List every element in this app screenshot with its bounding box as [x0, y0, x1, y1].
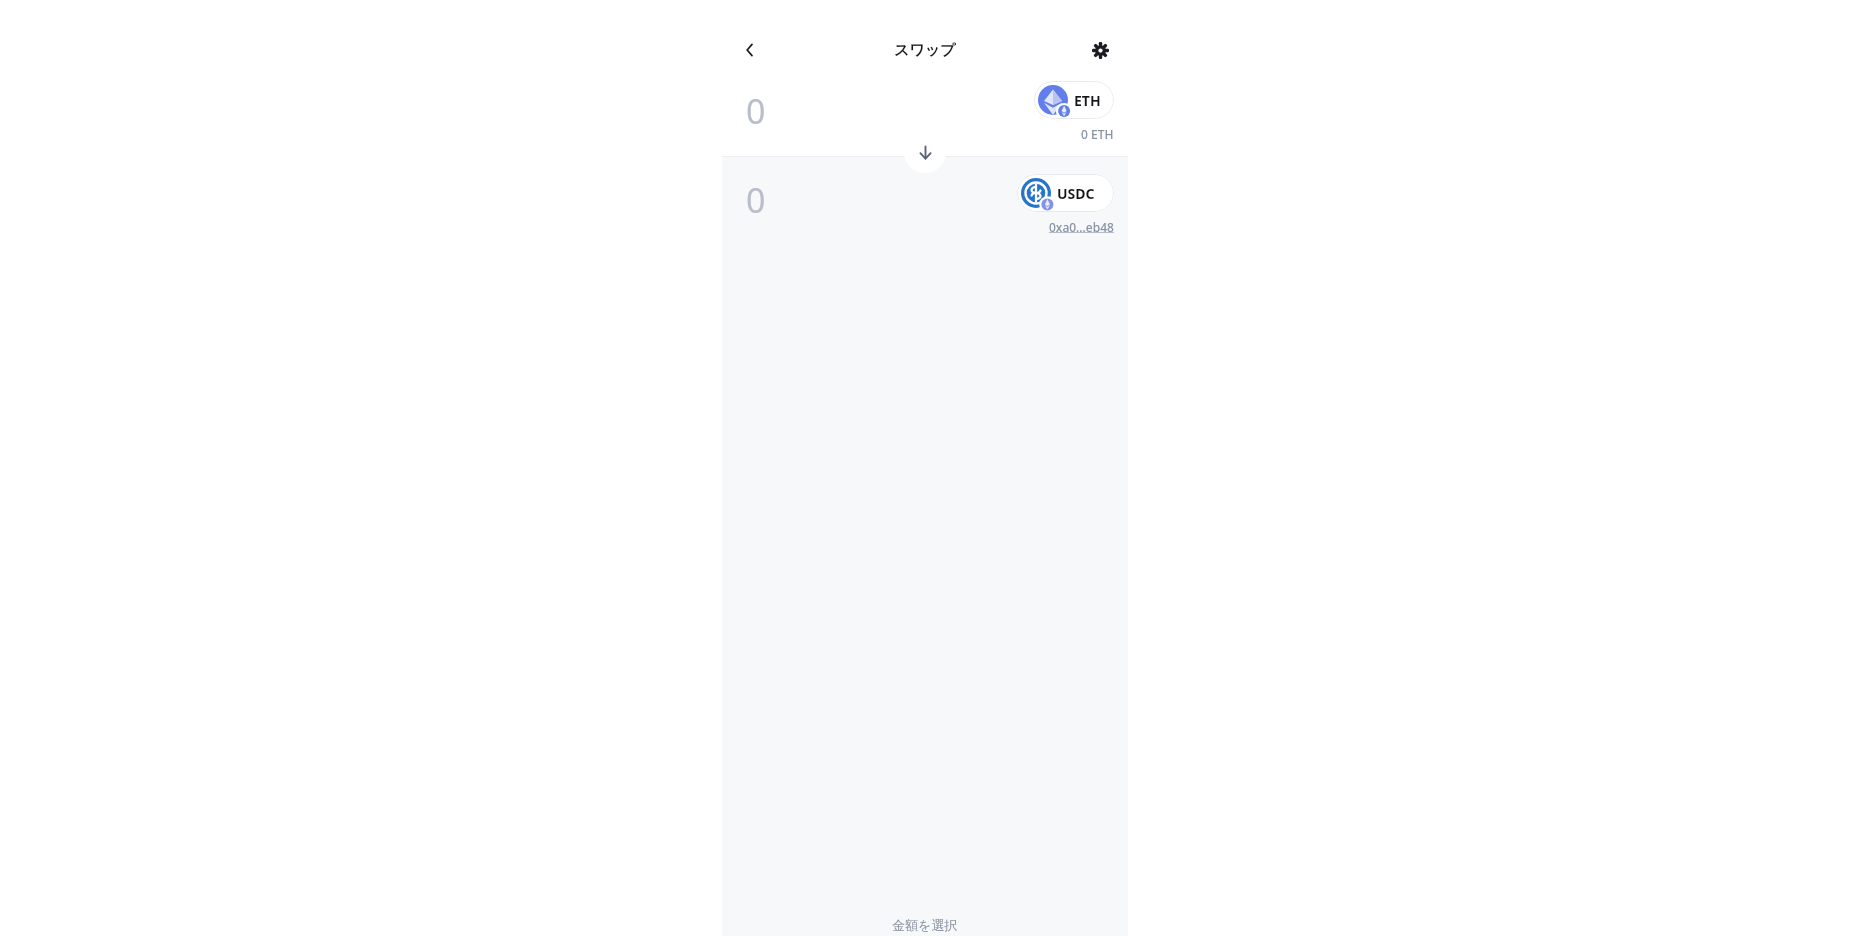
staticText: スワップ: [894, 41, 956, 60]
button[interactable]: 0xa0…eb48: [1049, 219, 1114, 235]
button[interactable]: USDC: [1017, 174, 1114, 212]
button[interactable]: Settings: [1082, 32, 1118, 68]
staticText: 0xa0…eb48: [1049, 219, 1114, 235]
staticText: 金額を選択: [892, 917, 958, 933]
staticText: ETH: [1074, 91, 1101, 110]
button[interactable]: Back: [732, 32, 768, 68]
staticText: USDC: [1057, 184, 1095, 203]
button[interactable]: Swap direction: [904, 131, 946, 173]
staticText: 0: [746, 177, 766, 223]
staticText: 0 ETH: [1081, 126, 1114, 142]
staticText: 0: [746, 88, 766, 134]
button[interactable]: ETH: [1034, 81, 1114, 119]
